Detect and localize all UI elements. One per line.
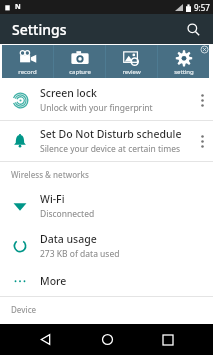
staticText: setting [174, 68, 194, 76]
button[interactable]: Wi-Fi [0, 186, 213, 226]
button[interactable]: Set Do Not Disturb schedule [0, 121, 213, 161]
staticText: review [122, 68, 141, 76]
button[interactable]: setting [158, 45, 209, 78]
staticText: Settings [12, 20, 67, 39]
staticText: More [40, 274, 67, 288]
staticText: Wi-Fi [40, 192, 65, 206]
button[interactable]: Recent apps [151, 324, 185, 355]
button[interactable]: capture [54, 45, 105, 78]
button[interactable]: More options [191, 80, 213, 120]
staticText: Disconnected [40, 208, 95, 220]
button[interactable]: More [0, 266, 213, 296]
button[interactable]: Home [90, 324, 124, 355]
button[interactable]: Search [181, 17, 205, 41]
staticText: N [15, 2, 21, 12]
staticText: Silence your device at certain times [40, 143, 181, 155]
staticText: 273 KB of data used [40, 248, 120, 260]
staticText: Device [11, 304, 37, 315]
staticText: capture [69, 68, 91, 76]
button[interactable]: Data usage [0, 226, 213, 266]
staticText: Set Do Not Disturb schedule [40, 127, 182, 141]
staticText: Unlock with your fingerprint [40, 102, 153, 114]
staticText: record [18, 68, 37, 76]
button[interactable]: record [2, 45, 53, 78]
button[interactable]: Screen lock [0, 80, 213, 120]
button[interactable]: More options [191, 121, 213, 161]
staticText: Screen lock [40, 86, 97, 100]
staticText: Wireless & networks [11, 169, 89, 180]
staticText: Data usage [40, 232, 97, 246]
button[interactable]: Settings [0, 14, 213, 44]
button[interactable]: Close overlay [201, 46, 208, 53]
staticText: 9:57 [194, 2, 210, 13]
button[interactable]: Back [28, 324, 62, 355]
button[interactable]: review [106, 45, 157, 78]
